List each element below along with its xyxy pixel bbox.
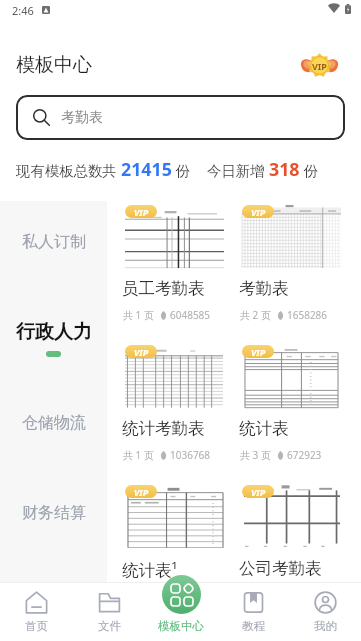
staticText: 模板中心 [16,53,92,77]
staticText: 财务结算 [22,503,86,523]
button[interactable]: VIP [302,52,337,77]
staticText: VIP [134,486,149,498]
staticText: 2:46 [12,3,34,18]
staticText: 今日新增 [207,161,269,181]
staticText: VIP [134,346,149,358]
button[interactable]: VIP [125,344,224,468]
button[interactable]: 仓储物流 [0,378,107,468]
staticText: 考勤表 [239,278,289,299]
staticText: 员工考勤表 [122,278,205,299]
staticText: VIP [251,346,266,358]
staticText: 考勤表 [61,109,103,127]
staticText: 共 2 页 [240,308,271,322]
button[interactable]: VIP [242,484,341,608]
staticText: VIP [251,206,266,218]
staticText: 统计表 [239,418,289,439]
button[interactable]: 我的 [289,583,361,641]
staticText: 318 [269,157,300,181]
button[interactable]: 教程 [217,583,289,641]
staticText: 仓储物流 [22,413,86,433]
button[interactable]: 财务结算 [0,468,107,558]
button[interactable]: 考勤表 [16,95,345,140]
button[interactable]: 首页 [0,583,73,641]
button[interactable]: 模板中心 [145,583,217,641]
staticText: VIP [134,206,149,218]
staticText: 672923 [287,448,322,462]
staticText: 首页 [25,619,48,633]
button[interactable]: 私人订制 [0,197,107,287]
staticText: VIP [312,60,327,72]
staticText: 教程 [242,619,265,633]
staticText: 行政人力 [16,320,92,344]
staticText: 1658286 [287,308,328,322]
staticText: 我的 [314,619,337,633]
button[interactable]: VIP [242,344,341,468]
button[interactable]: VIP [125,484,224,608]
staticText: 共 1 页 [123,308,154,322]
staticText: 份 [300,161,319,181]
staticText: 份 [172,161,191,181]
staticText: 公司考勤表 [239,558,322,579]
staticText: 统计考勤表 [122,418,205,439]
staticText: VIP [251,486,266,498]
staticText: 模板中心 [158,619,204,633]
staticText: 1036768 [170,448,211,462]
button[interactable]: 行政人力 [0,287,107,377]
staticText: 现有模板总数共 [16,161,121,181]
button[interactable]: VIP [242,204,341,328]
staticText: 共 3 页 [240,448,271,462]
staticText: 私人订制 [22,232,86,252]
button[interactable]: VIP [125,204,224,328]
staticText: 统计表¹ [122,558,178,581]
staticText: 文件 [98,619,121,633]
staticText: 6048585 [170,308,211,322]
staticText: 21415 [121,157,172,181]
staticText: 共 1 页 [123,448,154,462]
button[interactable]: 文件 [73,583,145,641]
